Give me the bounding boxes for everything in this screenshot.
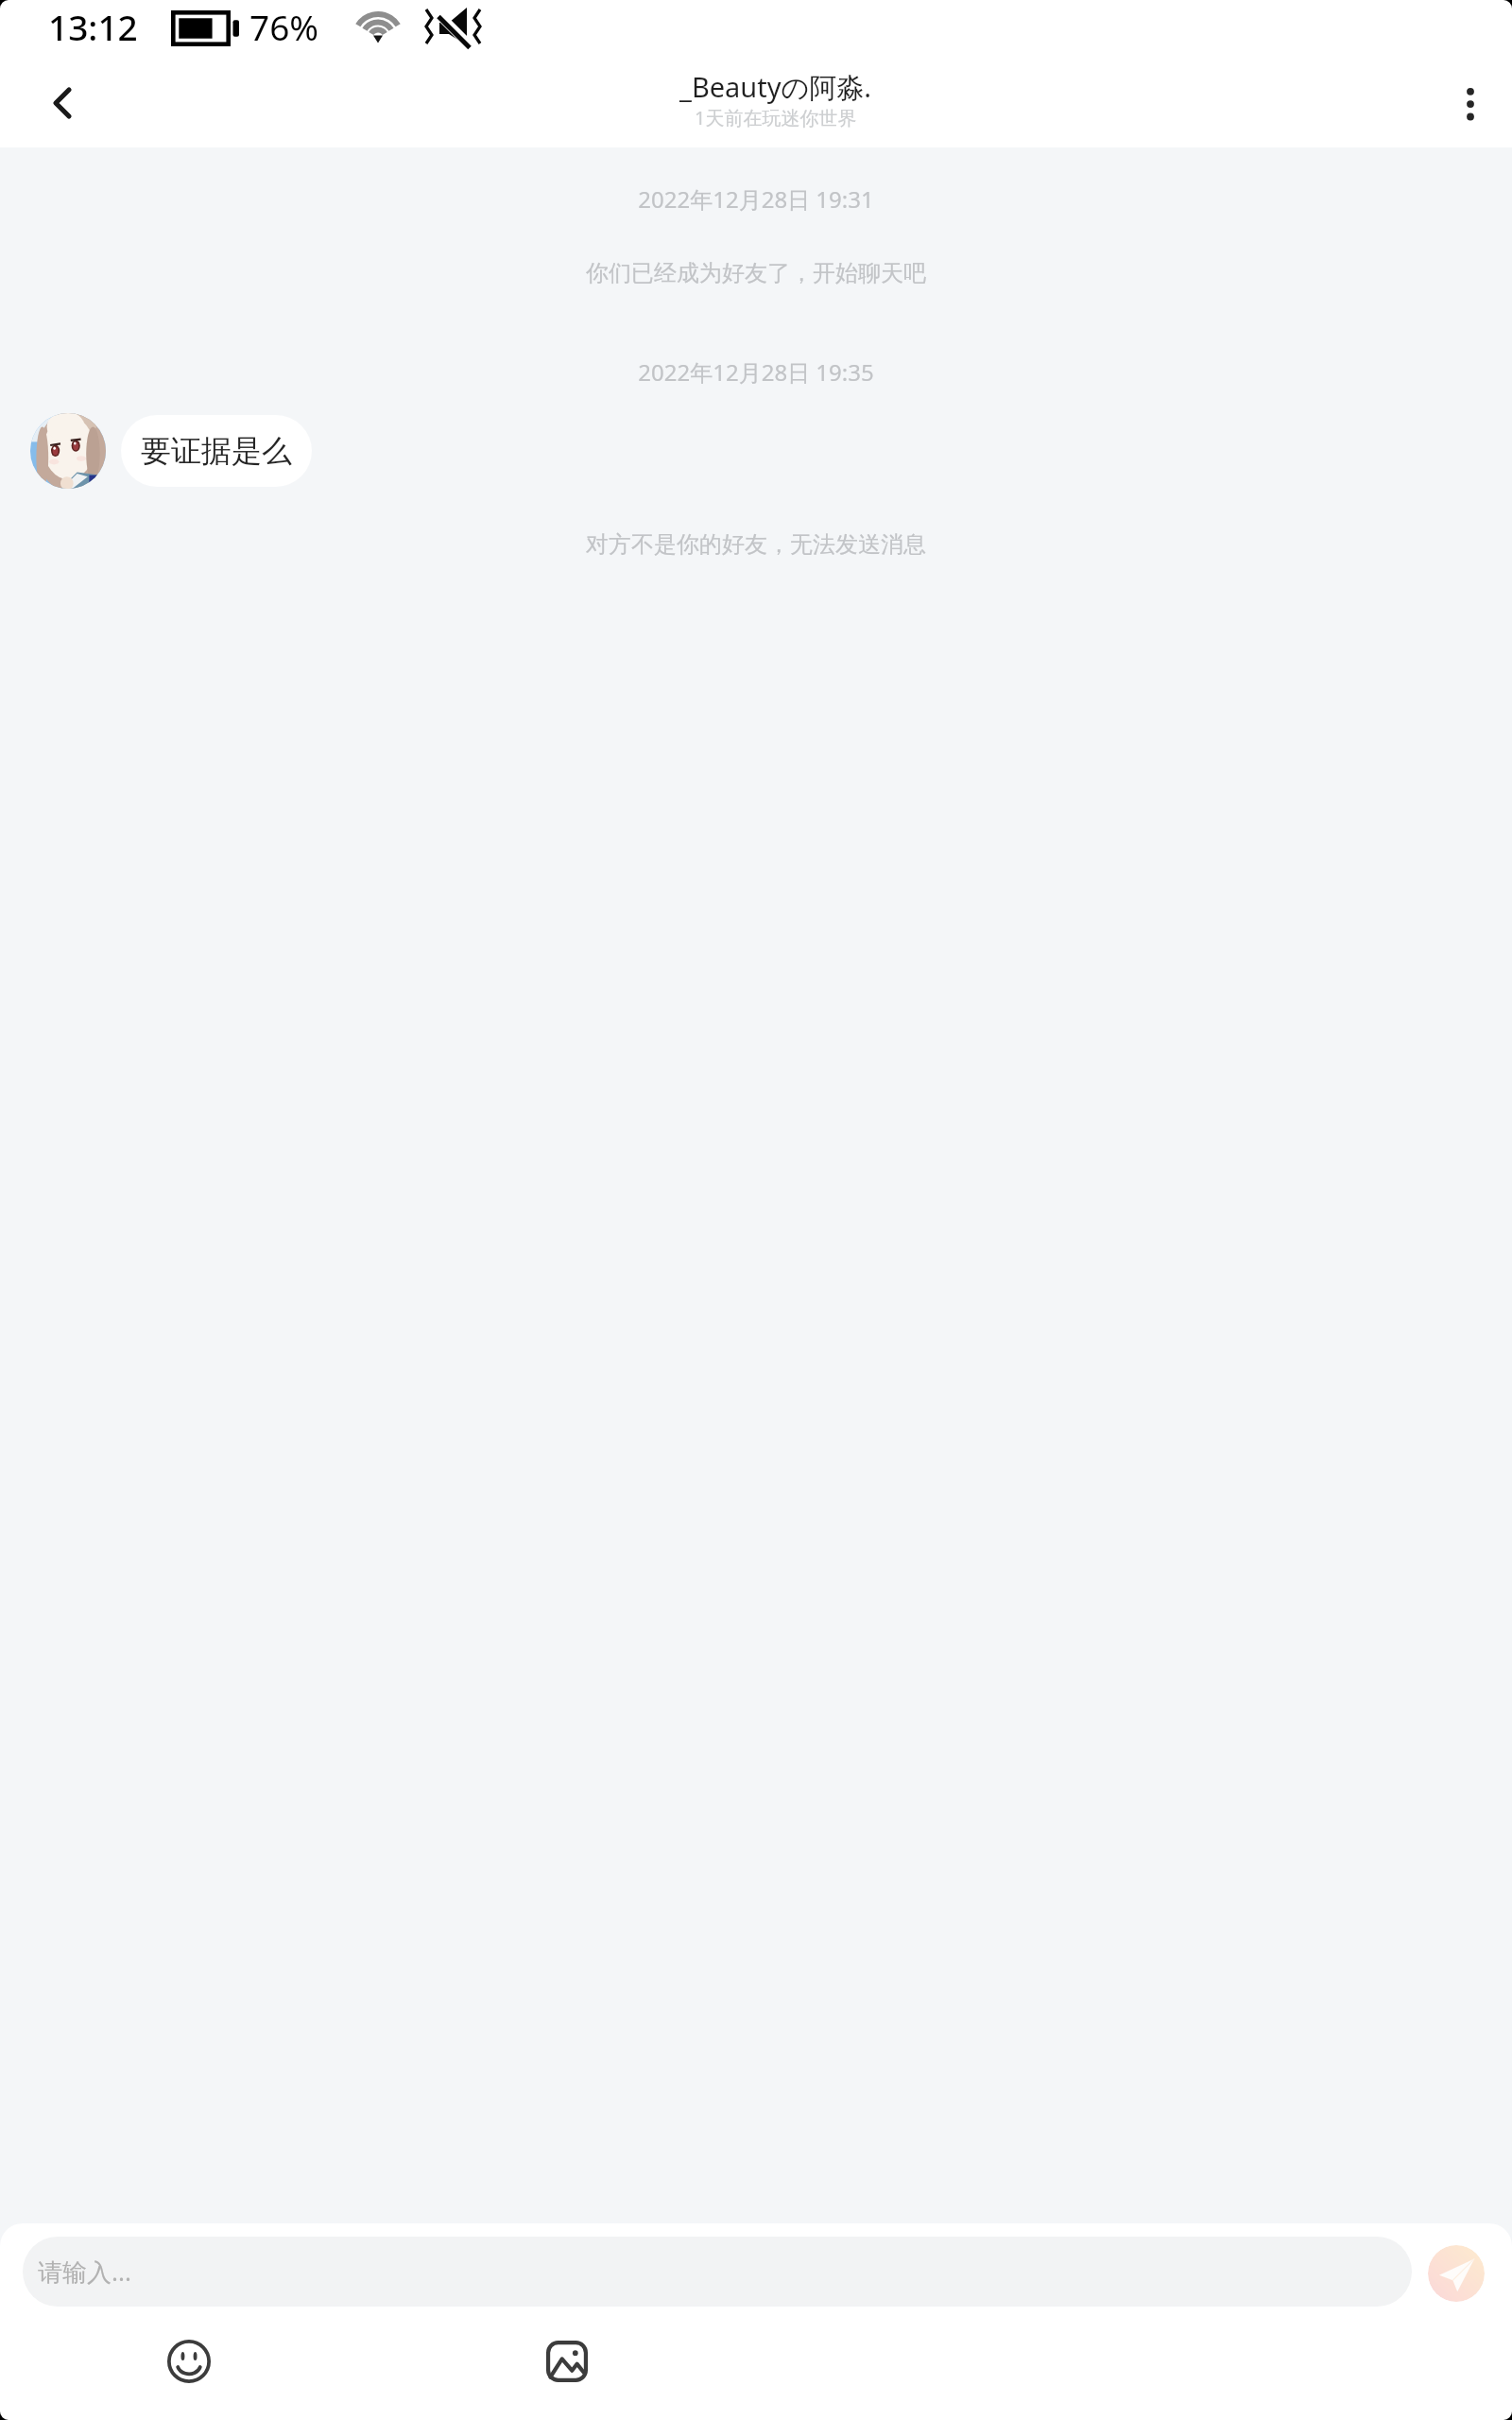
staticText: 1天前在玩迷你世界 [695, 105, 857, 130]
staticText: 请输入... [38, 2255, 131, 2289]
button[interactable]: More options [1447, 78, 1494, 134]
button[interactable]: Image [539, 2333, 595, 2390]
staticText: 13:12 [48, 3, 138, 50]
staticText: _Beautyの阿淼. [679, 68, 871, 106]
staticText: 对方不是你的好友，无法发送消息 [586, 530, 926, 559]
button[interactable]: Back [26, 70, 99, 136]
staticText: 76% [249, 3, 319, 50]
staticText: 你们已经成为好友了，开始聊天吧 [586, 259, 926, 287]
staticText: 2022年12月28日 19:31 [638, 183, 874, 215]
button[interactable]: Emoji [161, 2333, 217, 2390]
button[interactable]: 请输入... [23, 2237, 1412, 2307]
button[interactable]: 要证据是么 [121, 415, 312, 487]
staticText: 2022年12月28日 19:35 [638, 356, 874, 388]
staticText: 要证据是么 [141, 432, 292, 470]
button[interactable]: Send [1428, 2245, 1485, 2302]
